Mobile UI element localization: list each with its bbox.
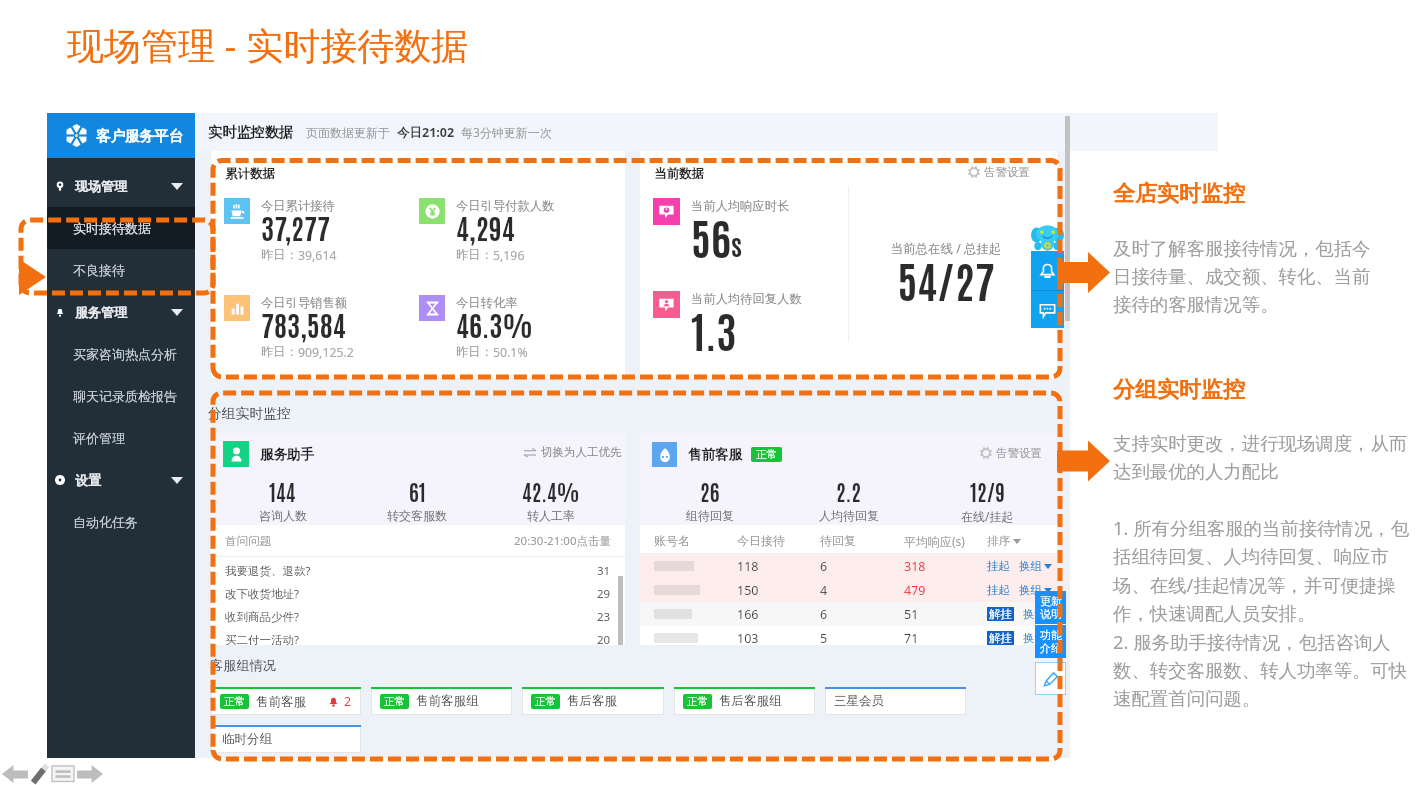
button[interactable]: 换组 [1019, 583, 1052, 597]
button[interactable]: 通知 [1031, 251, 1064, 290]
staticText: 46.3% [456, 306, 533, 342]
button[interactable]: 功能 介绍 [1035, 625, 1066, 658]
staticText: 改下收货地址? [225, 586, 299, 602]
button[interactable]: 服务管理 [47, 291, 195, 333]
staticText: 换组 [1023, 631, 1046, 645]
staticText: 5,196 [493, 247, 525, 264]
button[interactable]: 买二付一活动? [211, 628, 625, 645]
button[interactable]: 切换为人工优先 [524, 445, 622, 459]
staticText: 783,584 [261, 306, 346, 342]
staticText: 更新 说明 [1040, 594, 1062, 621]
staticText: 售前客服 [688, 446, 742, 463]
staticText: 换组 [1023, 607, 1046, 621]
staticText: 61 [409, 478, 426, 505]
button[interactable]: 103 [640, 626, 1057, 645]
button[interactable]: 买家咨询热点分析 [47, 333, 195, 375]
button[interactable]: 收到商品少件? [211, 605, 625, 628]
staticText: 318 [904, 558, 987, 575]
staticText: 累计数据 [225, 166, 275, 182]
staticText: 56 [691, 208, 731, 264]
button[interactable]: 166 [640, 602, 1057, 626]
button[interactable]: 实时接待数据 [47, 207, 195, 249]
button[interactable]: 150 [640, 578, 1057, 602]
button[interactable]: 自动化任务 [47, 501, 195, 543]
staticText: 解挂 [989, 607, 1012, 621]
button[interactable]: 解挂 [989, 631, 1012, 645]
button[interactable]: 告警设置 [968, 165, 1030, 179]
button[interactable]: 三星会员 [825, 687, 966, 715]
staticText: 售后客服 [567, 693, 617, 709]
button[interactable]: 换组 [1023, 631, 1056, 645]
button[interactable]: 聊天记录质检报告 [47, 375, 195, 417]
staticText: 50.1% [493, 344, 528, 361]
staticText: 1.3 [691, 301, 737, 357]
staticText: 正常 [224, 695, 245, 708]
staticText: 服务管理 [75, 304, 127, 320]
staticText: 今日累计接待 [261, 198, 335, 213]
button[interactable]: 客户服务平台 [47, 113, 195, 158]
staticText: 正常 [756, 448, 777, 461]
button[interactable]: 更新 说明 [1035, 591, 1066, 624]
staticText: 转人工率 [527, 508, 575, 523]
staticText: 20:30-21:00点击量 [514, 533, 611, 549]
staticText: 当前数据 [654, 166, 704, 182]
button[interactable]: 正常 [211, 687, 361, 715]
staticText: 及时了解客服接待情况，包括今日接待量、成交额、转化、当前接待的客服情况等。 [1113, 237, 1377, 316]
staticText: 正常 [384, 695, 405, 708]
staticText: 每3分钟更新一次 [461, 124, 552, 140]
button[interactable]: 临时分组 [211, 725, 361, 753]
staticText: 在线/挂起 [961, 508, 1014, 524]
staticText: 现场管理 - 实时接待数据 [67, 19, 469, 70]
button[interactable]: 换组 [1023, 607, 1056, 621]
staticText: 告警设置 [996, 446, 1042, 460]
button[interactable]: 正常 [522, 687, 664, 715]
staticText: 今日21:02 [397, 124, 455, 141]
staticText: 51 [904, 606, 987, 623]
button[interactable]: 118 [640, 554, 1057, 578]
staticText: 150 [737, 582, 820, 599]
button[interactable]: 现场管理 [47, 165, 195, 207]
staticText: 转交客服数 [387, 508, 447, 523]
staticText: 分组实时监控 [208, 405, 291, 422]
staticText: 现场管理 [75, 178, 127, 194]
staticText: 售前客服 [256, 694, 306, 710]
button[interactable]: 设置 [47, 459, 195, 501]
button[interactable]: 改下收货地址? [211, 582, 625, 605]
staticText: 切换为人工优先 [541, 445, 622, 459]
staticText: 解挂 [989, 631, 1012, 645]
button[interactable]: 挂起 [987, 559, 1010, 573]
staticText: 聊天记录质检报告 [73, 388, 177, 404]
staticText: 客服组情况 [210, 657, 276, 674]
button[interactable]: 挂起 [987, 583, 1010, 597]
button[interactable]: 正常 [674, 687, 815, 715]
staticText: 今日转化率 [456, 295, 518, 310]
staticText: 23 [597, 609, 611, 625]
button[interactable]: 告警设置 [980, 446, 1042, 460]
button[interactable]: 评价管理 [47, 417, 195, 459]
staticText: 功能 介绍 [1040, 628, 1062, 655]
staticText: 首问问题 [225, 534, 271, 548]
staticText: 当前人均响应时长 [691, 198, 790, 213]
staticText: 6 [820, 558, 904, 575]
button[interactable]: 解挂 [989, 607, 1012, 621]
button[interactable]: 不良接待 [47, 249, 195, 291]
staticText: 正常 [535, 695, 556, 708]
button[interactable]: 我要退货、退款? [211, 559, 625, 582]
staticText: 评价管理 [73, 430, 125, 446]
staticText: 告警设置 [984, 165, 1030, 179]
staticText: 29 [597, 586, 611, 602]
staticText: 今日引导销售额 [261, 295, 348, 310]
staticText: 设置 [75, 472, 101, 488]
button[interactable]: 排序 [987, 534, 1021, 548]
button[interactable]: 反馈 [1035, 662, 1066, 695]
button[interactable]: 在线客服 [1031, 291, 1064, 328]
staticText: 1. 所有分组客服的当前接待情况，包括组待回复、人均待回复、响应市场、在线/挂起… [1113, 515, 1410, 710]
staticText: 正常 [687, 695, 708, 708]
button[interactable]: 换组 [1019, 559, 1052, 573]
staticText: 支持实时更改，进行现场调度，从而达到最优的人力配比 [1113, 432, 1410, 483]
staticText: 166 [737, 606, 820, 623]
staticText: 实时接待数据 [73, 220, 151, 236]
staticText: 收到商品少件? [225, 609, 299, 625]
staticText: 4 [820, 582, 904, 599]
button[interactable]: 正常 [371, 687, 512, 715]
